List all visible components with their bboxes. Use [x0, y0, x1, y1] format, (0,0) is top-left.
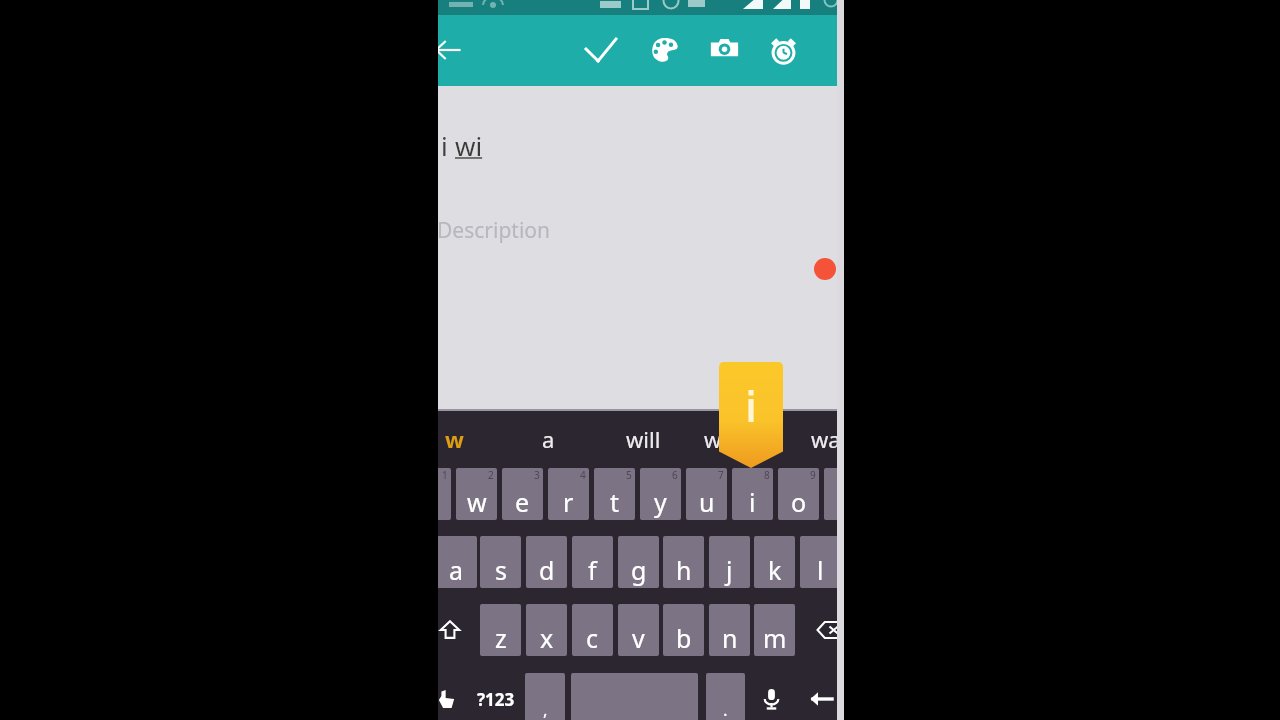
staticText: n [722, 621, 738, 655]
staticText: wa [811, 424, 837, 454]
staticText: d [539, 553, 555, 587]
button[interactable]: Color [645, 31, 683, 69]
button[interactable]: u [686, 468, 727, 520]
staticText: c [586, 621, 599, 655]
button[interactable]: q [438, 468, 451, 520]
staticText: b [676, 621, 692, 655]
button[interactable]: ?123 [471, 673, 520, 720]
button[interactable]: . [706, 673, 745, 720]
button[interactable]: c [572, 604, 613, 656]
staticText: i [749, 485, 756, 519]
button[interactable]: Key preview i [719, 362, 783, 468]
staticText: r [563, 485, 574, 519]
staticText: 4 [580, 468, 586, 482]
staticText: ?123 [477, 688, 515, 711]
button[interactable]: Save [582, 31, 620, 69]
staticText: 1 [442, 468, 448, 482]
staticText: w [445, 424, 464, 454]
staticText: t [610, 485, 620, 519]
button[interactable]: Description [438, 216, 551, 245]
staticText: 9 [810, 468, 816, 482]
button[interactable]: j [709, 536, 750, 588]
staticText: a [542, 424, 555, 454]
button[interactable]: Camera [705, 29, 743, 67]
button[interactable]: , [525, 673, 565, 720]
button[interactable]: w [456, 468, 497, 520]
staticText: l [817, 553, 824, 587]
button[interactable]: o [778, 468, 819, 520]
staticText: x [540, 621, 554, 655]
button[interactable]: z [480, 604, 521, 656]
button[interactable]: Emoji [438, 673, 464, 720]
staticText: s [495, 553, 507, 587]
button[interactable]: v [618, 604, 659, 656]
staticText: o [791, 485, 807, 519]
staticText: w [467, 485, 487, 519]
button[interactable]: x [526, 604, 567, 656]
button[interactable]: Shift [438, 604, 473, 656]
button[interactable]: i [441, 128, 483, 163]
button[interactable]: w [683, 409, 743, 461]
button[interactable]: wa [796, 409, 837, 461]
button[interactable]: Back [438, 32, 465, 68]
staticText: 2 [488, 468, 494, 482]
staticText: v [632, 621, 645, 655]
staticText: k [768, 553, 782, 587]
staticText: wi [455, 128, 483, 163]
button[interactable]: i [732, 468, 773, 520]
button[interactable]: w [438, 409, 484, 461]
staticText: w [704, 424, 722, 454]
button[interactable]: will [613, 409, 673, 461]
staticText: a [449, 553, 464, 587]
staticText: h [676, 553, 692, 587]
button[interactable]: n [709, 604, 750, 656]
button[interactable]: r [548, 468, 589, 520]
button[interactable]: b [663, 604, 704, 656]
staticText: y [654, 485, 667, 519]
button[interactable]: Enter [804, 673, 837, 720]
button[interactable]: p [824, 468, 837, 520]
button[interactable]: y [640, 468, 681, 520]
button[interactable]: k [754, 536, 795, 588]
button[interactable]: a [438, 536, 477, 588]
staticText: will [626, 424, 661, 454]
staticText: . [723, 698, 728, 720]
button[interactable]: f [572, 536, 613, 588]
staticText: , [543, 698, 548, 720]
staticText: z [495, 621, 507, 655]
button[interactable]: a [518, 409, 578, 461]
button[interactable]: Reminder [764, 31, 802, 69]
staticText: j [726, 553, 733, 587]
staticText: m [763, 621, 787, 655]
staticText: e [515, 485, 530, 519]
staticText: 8 [764, 468, 770, 482]
button[interactable]: Backspace [807, 604, 837, 656]
staticText: 6 [672, 468, 678, 482]
button[interactable]: Record [814, 258, 836, 280]
staticText: 7 [718, 468, 724, 482]
button[interactable]: g [618, 536, 659, 588]
button[interactable]: Voice input [753, 673, 789, 720]
button[interactable]: e [502, 468, 543, 520]
staticText: f [588, 553, 597, 587]
button[interactable]: h [663, 536, 704, 588]
staticText: 3 [534, 468, 540, 482]
button[interactable]: l [800, 536, 837, 588]
staticText: i [441, 128, 455, 163]
staticText: u [699, 485, 715, 519]
staticText: 5 [626, 468, 632, 482]
staticText: g [631, 553, 647, 587]
button[interactable]: d [526, 536, 567, 588]
button[interactable]: t [594, 468, 635, 520]
button[interactable]: s [480, 536, 521, 588]
button[interactable]: m [754, 604, 795, 656]
